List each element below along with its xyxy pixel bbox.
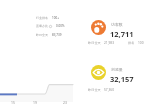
staticText: 行业排名 <box>36 16 48 20</box>
button[interactable]: 昨日全天 <box>36 33 62 37</box>
staticText: 57,360 <box>104 88 114 92</box>
staticText: 100+ <box>52 16 59 20</box>
staticText: 21,983 <box>104 41 114 45</box>
staticText: 32,157 <box>110 74 134 84</box>
staticText: 12,711 <box>110 29 134 39</box>
staticText: 19 <box>33 100 37 105</box>
staticText: 昨日全天 <box>88 88 101 92</box>
staticText: 100 <box>138 41 144 45</box>
button[interactable] <box>86 61 156 91</box>
staticText: 昨日全天 <box>88 41 101 45</box>
staticText: 排名 <box>128 41 135 45</box>
staticText: 83,739 <box>52 33 62 37</box>
staticText: 昨日全天 <box>36 33 48 37</box>
staticText: 15 <box>11 100 15 105</box>
button[interactable]: 行业排名 <box>36 16 59 20</box>
other: 访客数 <box>91 20 106 35</box>
button[interactable] <box>86 16 156 46</box>
staticText: 23 <box>63 100 67 105</box>
staticText: 访客数 <box>111 22 123 27</box>
staticText: 浏览量 <box>111 67 123 72</box>
button[interactable]: 直播占比 <box>36 24 65 28</box>
staticText: 直播占比 <box>36 24 48 28</box>
staticText: 0.00% <box>56 24 65 28</box>
other: 浏览量 <box>91 65 106 80</box>
